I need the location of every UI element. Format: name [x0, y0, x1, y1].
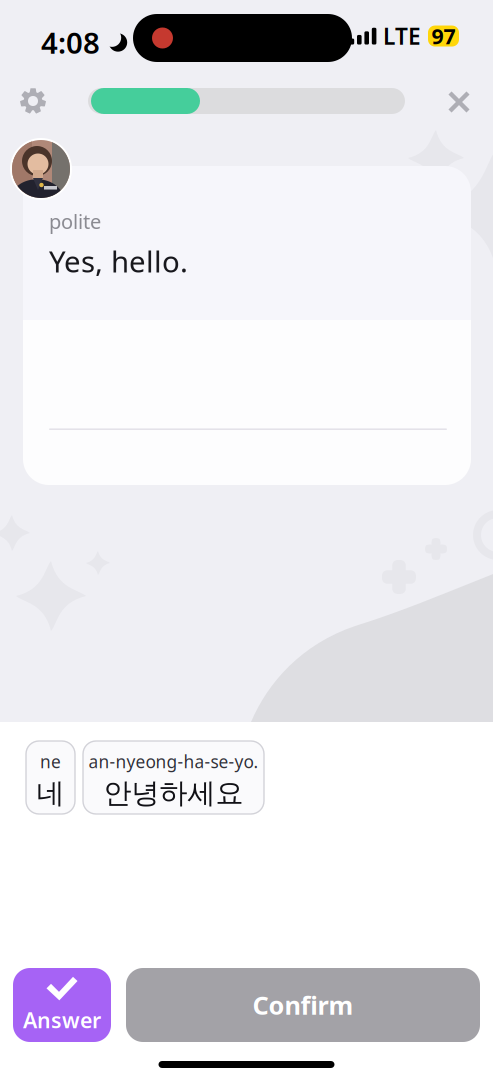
staticText: LTE: [383, 21, 421, 51]
staticText: 97: [431, 22, 455, 50]
button[interactable]: an-nyeong-ha-se-yo.: [83, 741, 264, 814]
button[interactable]: Confirm: [126, 968, 480, 1042]
button[interactable]: Close: [437, 80, 481, 124]
staticText: Yes, hello.: [49, 242, 188, 281]
staticText: polite: [49, 208, 101, 235]
button[interactable]: Settings: [11, 79, 55, 123]
staticText: Answer: [23, 1006, 101, 1034]
staticText: 4:08: [41, 23, 100, 62]
button[interactable]: Answer: [13, 968, 111, 1042]
staticText: 네: [36, 776, 64, 810]
staticText: an-nyeong-ha-se-yo.: [88, 750, 258, 773]
staticText: Confirm: [252, 988, 353, 1022]
staticText: ne: [40, 750, 61, 773]
button[interactable]: ne: [26, 741, 75, 814]
staticText: 안녕하세요: [103, 776, 243, 810]
